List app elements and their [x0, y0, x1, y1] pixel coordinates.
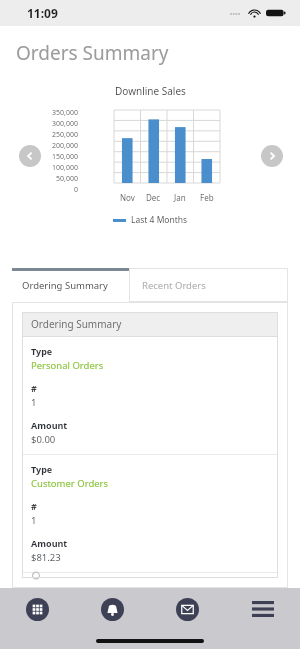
staticText: 50,000 — [40, 174, 78, 184]
button[interactable]: Messages — [150, 588, 225, 630]
button[interactable]: Next — [261, 145, 283, 167]
staticText: Amount — [31, 537, 68, 549]
staticText: Amount — [31, 419, 68, 431]
staticText: 150,000 — [40, 152, 78, 162]
staticText: Nov — [120, 192, 135, 203]
staticText: Feb — [200, 192, 214, 203]
button[interactable]: Ordering Summary — [12, 268, 130, 302]
staticText: 11:09 — [27, 5, 58, 21]
button[interactable]: Dashboard — [0, 588, 75, 630]
button[interactable]: Previous — [19, 145, 41, 167]
staticText: Dec — [146, 192, 161, 203]
staticText: Recent Orders — [142, 279, 206, 292]
staticText: 350,000 — [40, 108, 78, 118]
staticText: 1 — [31, 514, 37, 527]
staticText: 300,000 — [40, 119, 78, 129]
staticText: Type — [31, 463, 53, 475]
staticText: 0 — [40, 185, 78, 195]
staticText: Last 4 Months — [131, 214, 188, 226]
staticText: 1 — [31, 396, 37, 409]
staticText: $0.00 — [31, 433, 56, 446]
button[interactable]: Recent Orders — [130, 268, 288, 302]
staticText: Ordering Summary — [22, 279, 108, 292]
staticText: Customer Orders — [31, 477, 109, 490]
staticText: Ordering Summary — [31, 317, 122, 331]
button[interactable]: Refresh — [22, 573, 278, 578]
staticText: # — [31, 382, 37, 394]
button[interactable]: Notifications — [75, 588, 150, 630]
button[interactable]: Menu — [225, 588, 300, 630]
staticText: Type — [31, 345, 53, 357]
staticText: Jan — [174, 192, 186, 203]
staticText: Personal Orders — [31, 359, 104, 372]
staticText: Downline Sales — [115, 84, 186, 98]
staticText: Orders Summary — [16, 40, 169, 66]
staticText: 250,000 — [40, 130, 78, 140]
staticText: 200,000 — [40, 141, 78, 151]
staticText: # — [31, 500, 37, 512]
staticText: $81.23 — [31, 551, 61, 564]
staticText: 100,000 — [40, 163, 78, 173]
